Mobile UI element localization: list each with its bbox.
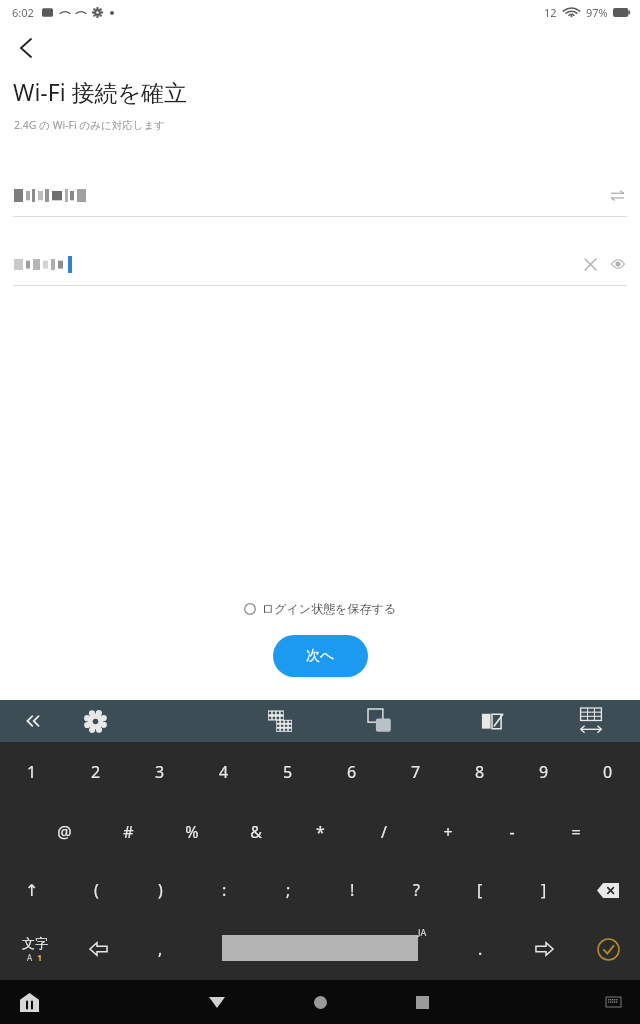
- staticText: *: [316, 821, 325, 843]
- staticText: ]: [541, 879, 547, 901]
- staticText: 6: [347, 761, 357, 783]
- staticText: 12: [544, 5, 557, 20]
- button[interactable]: /: [352, 802, 416, 861]
- button[interactable]: ログイン状態を保存する: [0, 601, 640, 616]
- staticText: 0: [603, 761, 613, 783]
- button[interactable]: 0: [576, 742, 640, 802]
- button[interactable]: Assistant: [12, 985, 46, 1019]
- button[interactable]: 1: [0, 742, 64, 802]
- button[interactable]: ]: [512, 861, 576, 919]
- staticText: 4: [219, 761, 229, 783]
- staticText: ;: [286, 879, 291, 901]
- staticText: 7: [411, 761, 421, 783]
- button[interactable]: Switch input method: [596, 985, 630, 1019]
- button[interactable]: Keyboard layout: [262, 703, 298, 739]
- staticText: 6:02: [12, 5, 34, 20]
- staticText: 2.4G の Wi-Fi のみに対応します: [14, 118, 165, 132]
- button[interactable]: Home: [300, 982, 340, 1022]
- button[interactable]: =: [544, 802, 608, 861]
- button[interactable]: 8: [448, 742, 512, 802]
- staticText: 97%: [586, 5, 608, 20]
- button[interactable]: ,: [132, 919, 188, 979]
- staticText: JA: [418, 926, 427, 938]
- button[interactable]: 文字: [6, 919, 64, 979]
- button[interactable]: %: [160, 802, 224, 861]
- button[interactable]: 次へ: [273, 635, 368, 677]
- button[interactable]: Recents: [402, 982, 442, 1022]
- button[interactable]: Switch network: [0, 174, 640, 216]
- button[interactable]: Dictionary: [474, 703, 510, 739]
- staticText: (: [94, 879, 99, 901]
- staticText: +: [443, 821, 453, 843]
- button[interactable]: 5: [256, 742, 320, 802]
- button[interactable]: Move cursor left: [70, 919, 126, 979]
- button[interactable]: 2: [64, 742, 128, 802]
- button[interactable]: Resize keyboard: [572, 702, 610, 740]
- staticText: 5: [283, 761, 293, 783]
- staticText: 8: [475, 761, 485, 783]
- staticText: %: [185, 821, 199, 843]
- button[interactable]: Show password: [604, 250, 632, 278]
- button[interactable]: Settings: [78, 704, 112, 738]
- staticText: =: [571, 821, 581, 843]
- staticText: 1: [37, 951, 43, 963]
- button[interactable]: Confirm: [580, 919, 636, 979]
- staticText: 3: [155, 761, 165, 783]
- staticText: A: [27, 952, 33, 963]
- staticText: &: [250, 821, 262, 843]
- button[interactable]: 7: [384, 742, 448, 802]
- button[interactable]: Input mode: [362, 703, 398, 739]
- button[interactable]: Switch network: [602, 180, 632, 210]
- staticText: ?: [413, 879, 420, 901]
- button[interactable]: [: [448, 861, 512, 919]
- button[interactable]: Clear: [0, 243, 640, 285]
- staticText: ↑: [25, 881, 39, 900]
- staticText: @: [57, 821, 72, 843]
- button[interactable]: 3: [128, 742, 192, 802]
- button[interactable]: !: [320, 861, 384, 919]
- button[interactable]: Clear: [576, 250, 604, 278]
- button[interactable]: 4: [192, 742, 256, 802]
- button[interactable]: :: [192, 861, 256, 919]
- staticText: ログイン状態を保存する: [262, 601, 396, 616]
- staticText: ,: [158, 938, 163, 960]
- button[interactable]: ↑: [0, 861, 64, 919]
- staticText: Wi-Fi 接続を確立: [13, 76, 188, 107]
- button[interactable]: &: [224, 802, 288, 861]
- button[interactable]: (: [64, 861, 128, 919]
- staticText: :: [222, 879, 227, 901]
- button[interactable]: Backspace: [576, 861, 640, 919]
- staticText: .: [478, 938, 483, 960]
- button[interactable]: *: [288, 802, 352, 861]
- staticText: /: [381, 821, 387, 843]
- button[interactable]: ): [128, 861, 192, 919]
- staticText: [: [477, 879, 483, 901]
- staticText: 2: [91, 761, 101, 783]
- staticText: #: [123, 821, 134, 843]
- button[interactable]: Collapse: [16, 704, 50, 738]
- staticText: ): [158, 879, 163, 901]
- staticText: 1: [27, 761, 37, 783]
- button[interactable]: ;: [256, 861, 320, 919]
- staticText: -: [509, 821, 515, 843]
- button[interactable]: Move cursor right: [516, 919, 572, 979]
- staticText: 文字: [22, 935, 48, 951]
- staticText: 9: [539, 761, 549, 783]
- button[interactable]: Hide keyboard: [197, 982, 237, 1022]
- button[interactable]: #: [96, 802, 160, 861]
- staticText: !: [350, 879, 355, 901]
- button[interactable]: 6: [320, 742, 384, 802]
- button[interactable]: .: [452, 919, 508, 979]
- button[interactable]: Back: [6, 28, 46, 68]
- button[interactable]: @: [32, 802, 96, 861]
- button[interactable]: -: [480, 802, 544, 861]
- staticText: 次へ: [306, 647, 335, 665]
- button[interactable]: +: [416, 802, 480, 861]
- button[interactable]: 9: [512, 742, 576, 802]
- button[interactable]: ?: [384, 861, 448, 919]
